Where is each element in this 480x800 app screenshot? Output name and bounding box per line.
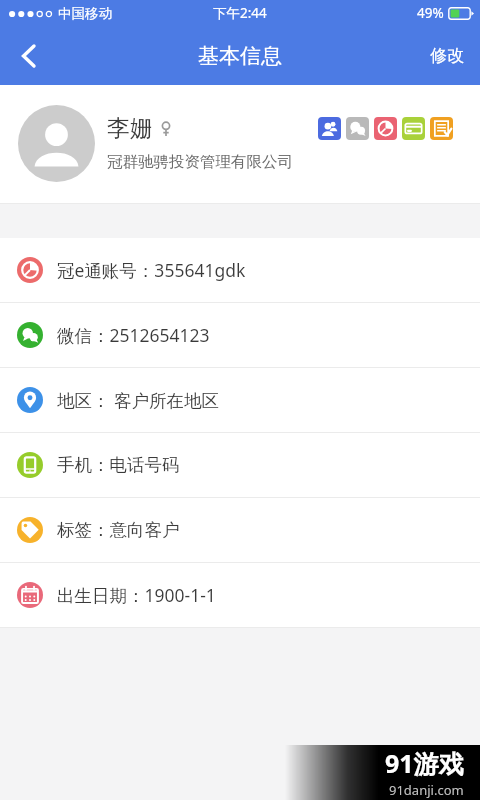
button[interactable]: 修改 <box>414 26 480 85</box>
button[interactable]: 返回 <box>0 28 56 84</box>
staticText: 手机：电话号码 <box>57 454 180 476</box>
staticText: 出生日期：1900-1-1 <box>57 583 216 607</box>
button[interactable]: 手机：电话号码 <box>0 433 480 497</box>
button[interactable]: 地区： 客户所在地区 <box>0 368 480 432</box>
button[interactable]: 微信 <box>346 117 369 140</box>
staticText: 冠群驰骋投资管理有限公司 <box>107 152 293 172</box>
staticText: 微信：2512654123 <box>57 323 210 347</box>
staticText: 下午2:44 <box>213 4 267 22</box>
button[interactable]: 出生日期：1900-1-1 <box>0 563 480 627</box>
button[interactable]: 订单 <box>430 117 453 140</box>
staticText: 91游戏 <box>385 746 464 780</box>
staticText: 标签：意向客户 <box>57 519 180 541</box>
button[interactable]: 冠e通账号：355641gdk <box>0 238 480 302</box>
staticText: 中国移动 <box>58 5 112 22</box>
staticText: 91danji.com <box>389 781 464 799</box>
staticText: 冠e通账号：355641gdk <box>57 258 246 282</box>
button[interactable]: 头像 <box>18 105 95 182</box>
button[interactable]: 统计 <box>374 117 397 140</box>
button[interactable]: 标签：意向客户 <box>0 498 480 562</box>
staticText: 修改 <box>430 45 464 66</box>
staticText: 李姗 <box>107 114 153 143</box>
staticText: 地区： 客户所在地区 <box>57 388 220 412</box>
button[interactable]: 微信：2512654123 <box>0 303 480 367</box>
staticText: 49% <box>417 4 444 22</box>
staticText: 基本信息 <box>198 43 282 69</box>
button[interactable]: 联系人 <box>318 117 341 140</box>
button[interactable]: 银行卡 <box>402 117 425 140</box>
